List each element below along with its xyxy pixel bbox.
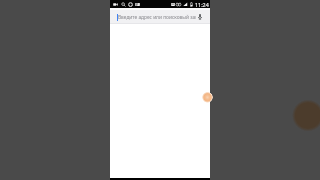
button[interactable]: Voice search (196, 13, 204, 21)
button[interactable]: Введите адрес или поисковый запрос (110, 10, 210, 23)
staticText: 11:24 (195, 1, 209, 8)
staticText: Введите адрес или поисковый запрос (118, 14, 196, 21)
